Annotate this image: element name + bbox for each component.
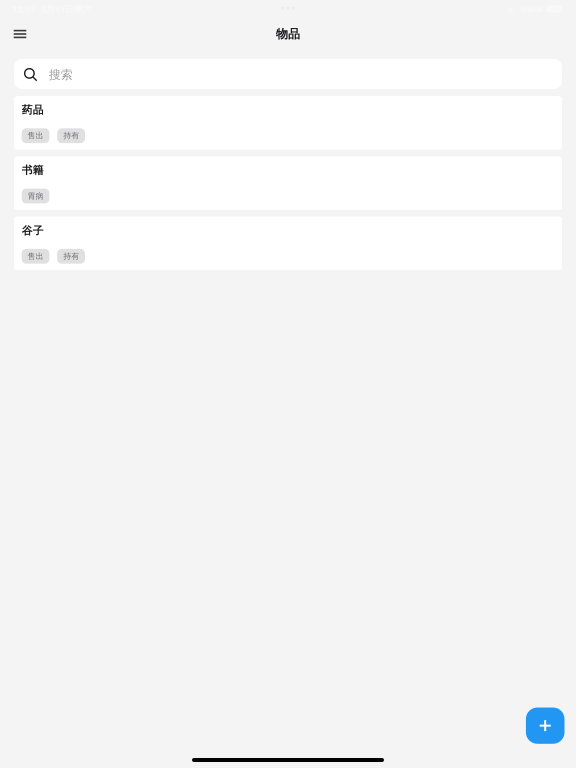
staticText: 胃病 bbox=[27, 191, 43, 201]
button[interactable]: 药品 bbox=[14, 96, 562, 149]
button[interactable]: 谷子 bbox=[14, 217, 562, 270]
staticText: 售出 bbox=[27, 131, 43, 141]
staticText: 持有 bbox=[63, 251, 79, 261]
staticText: 持有 bbox=[63, 131, 79, 141]
button[interactable]: 书籍 bbox=[14, 156, 562, 210]
staticText: 药品 bbox=[22, 103, 44, 116]
button[interactable]: Menu bbox=[14, 18, 43, 50]
staticText: 搜索 bbox=[49, 67, 73, 82]
staticText: 物品 bbox=[276, 27, 300, 41]
staticText: 售出 bbox=[27, 251, 43, 261]
staticText: 谷子 bbox=[22, 224, 44, 237]
staticText: 书籍 bbox=[22, 164, 44, 177]
button[interactable]: Add item bbox=[526, 707, 564, 744]
